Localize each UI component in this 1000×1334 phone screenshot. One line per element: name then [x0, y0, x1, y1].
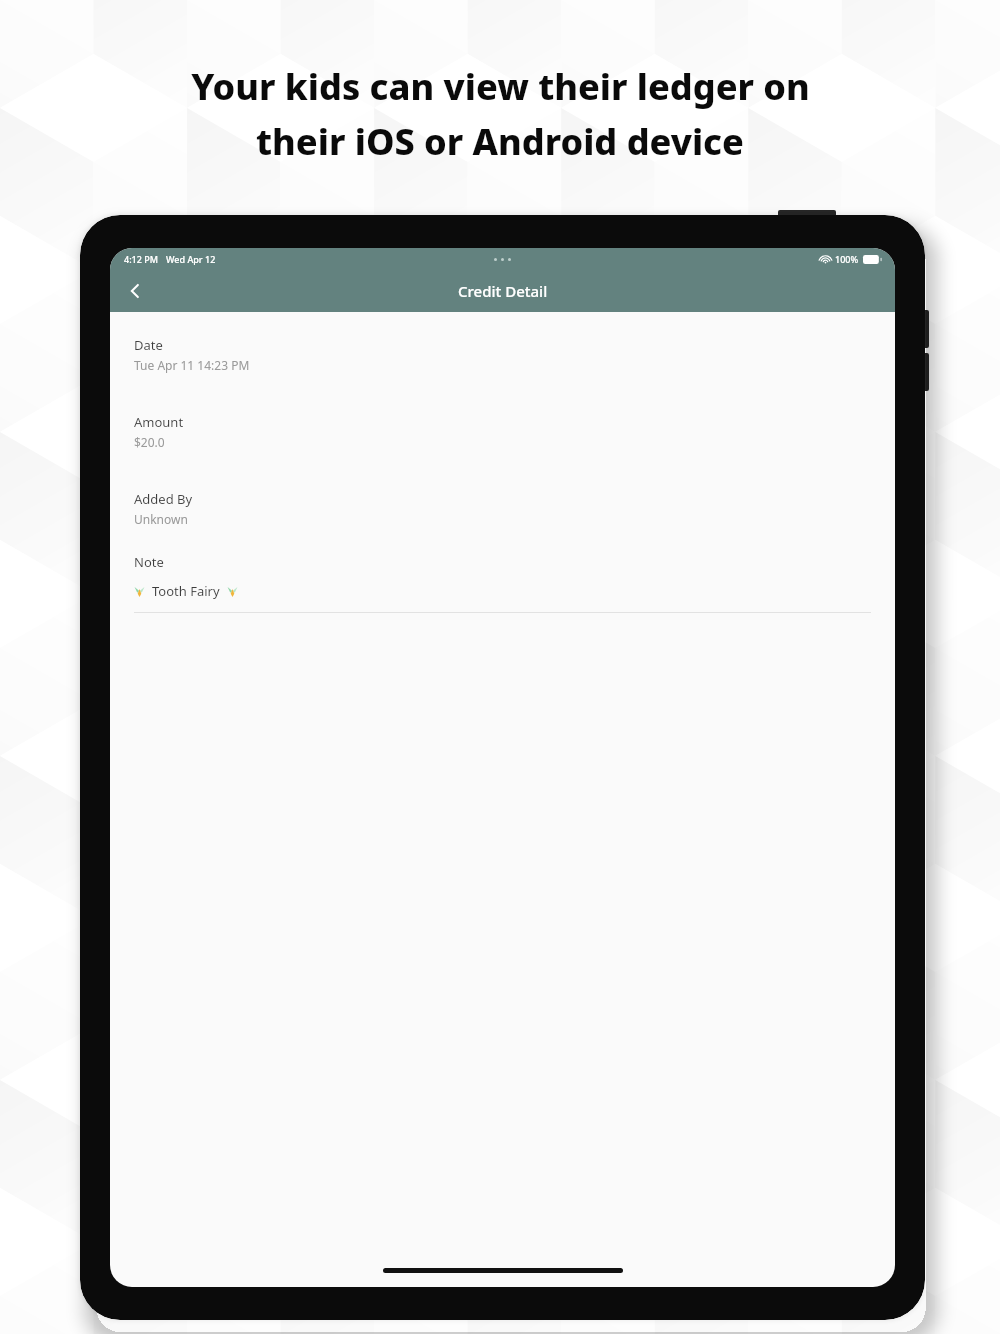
- staticText: 4:12 PM: [124, 253, 158, 265]
- button[interactable]: Tooth Fairy: [134, 582, 871, 600]
- staticText: Date: [134, 336, 163, 354]
- staticText: Note: [134, 553, 164, 571]
- button[interactable]: Amount: [134, 413, 871, 450]
- staticText: Unknown: [134, 511, 188, 527]
- staticText: Amount: [134, 413, 184, 431]
- staticText: Tue Apr 11 14:23 PM: [134, 357, 250, 373]
- staticText: 100%: [835, 253, 859, 265]
- staticText: $20.0: [134, 434, 165, 450]
- staticText: their iOS or Android device: [256, 117, 744, 166]
- staticText: Your kids can view their ledger on: [191, 62, 810, 111]
- button[interactable]: Back: [118, 274, 152, 308]
- staticText: Added By: [134, 490, 193, 508]
- button[interactable]: Added By: [134, 490, 871, 527]
- staticText: Tooth Fairy: [152, 582, 220, 600]
- staticText: Wed Apr 12: [166, 253, 216, 265]
- button[interactable]: Date: [134, 336, 871, 373]
- staticText: Credit Detail: [458, 281, 548, 301]
